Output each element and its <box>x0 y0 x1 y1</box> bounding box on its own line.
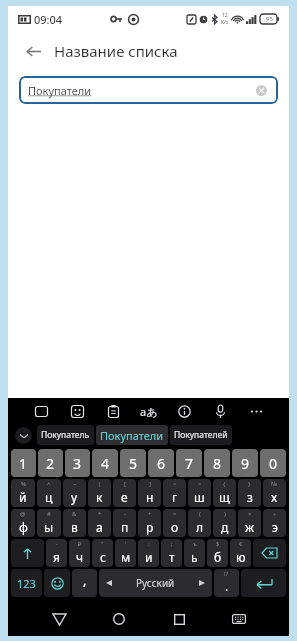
button[interactable]: ' <box>115 539 136 567</box>
button[interactable]: [ <box>113 479 136 507</box>
button[interactable]: : <box>138 539 159 567</box>
staticText: } <box>248 480 251 488</box>
button[interactable]: # <box>37 509 61 537</box>
staticText: 0 <box>269 454 278 473</box>
button[interactable]: 6 <box>148 449 174 477</box>
button[interactable]: , <box>72 569 97 597</box>
button[interactable]: € <box>230 539 251 567</box>
staticText: ; <box>171 540 173 548</box>
button[interactable]: 8 <box>204 449 230 477</box>
button[interactable]: ₽ <box>69 539 90 567</box>
button[interactable]: Sticker <box>66 400 88 422</box>
button[interactable]: Покупателей <box>170 425 232 445</box>
button[interactable]: Translate <box>138 400 160 422</box>
staticText: Покупателей <box>174 429 228 441</box>
button[interactable]: ÷ <box>263 509 286 537</box>
button[interactable]: 123 <box>11 569 42 597</box>
staticText: × <box>248 510 252 518</box>
button[interactable]: Русский <box>99 569 212 597</box>
button[interactable]: № <box>263 479 286 507</box>
button[interactable]: Hide keyboard <box>209 602 269 636</box>
staticText: з <box>247 489 253 505</box>
button[interactable]: * <box>88 509 111 537</box>
button[interactable]: = <box>163 509 186 537</box>
staticText: л <box>196 519 204 535</box>
staticText: 3 <box>73 454 82 473</box>
button[interactable]: - <box>46 539 67 567</box>
button[interactable]: 4 <box>92 449 118 477</box>
button[interactable]: Back <box>18 36 48 66</box>
staticText: 1 <box>19 454 28 473</box>
button[interactable]: ) <box>213 509 236 537</box>
staticText: @ <box>20 510 26 518</box>
button[interactable]: Shift <box>11 539 44 567</box>
staticText: 9 <box>241 454 250 473</box>
staticText: Русский <box>136 576 175 590</box>
button[interactable]: @ <box>11 509 35 537</box>
staticText: д <box>221 519 229 535</box>
button[interactable]: Emoji <box>44 569 70 597</box>
staticText: ( <box>199 510 201 518</box>
staticText: [ <box>124 480 126 488</box>
button[interactable]: Покупатели <box>19 76 278 104</box>
staticText: ~ <box>73 480 77 488</box>
button[interactable]: Expand suggestions <box>15 427 32 444</box>
staticText: ы <box>44 519 54 535</box>
button[interactable]: Voice input <box>209 400 231 422</box>
staticText: 2 <box>46 454 55 473</box>
button[interactable]: 1 <box>11 449 36 477</box>
staticText: 95 <box>266 15 273 23</box>
button[interactable]: | <box>88 479 111 507</box>
button[interactable]: Info <box>173 400 195 422</box>
button[interactable]: } <box>238 479 261 507</box>
button[interactable]: Покупатели <box>96 425 168 445</box>
button[interactable]: Home <box>89 602 149 636</box>
staticText: 123 <box>17 576 36 591</box>
staticText: , <box>83 571 87 589</box>
button[interactable]: Recent apps <box>149 602 209 636</box>
button[interactable]: { <box>213 479 236 507</box>
staticText: & <box>72 510 77 518</box>
button[interactable]: ~ <box>63 479 86 507</box>
button[interactable]: + <box>138 509 161 537</box>
button[interactable]: $ <box>207 539 228 567</box>
button[interactable]: ( <box>188 509 211 537</box>
button[interactable]: % <box>11 479 35 507</box>
button[interactable]: - <box>113 509 136 537</box>
staticText: !? <box>224 570 229 578</box>
button[interactable]: Clipboard <box>102 400 124 422</box>
staticText: у <box>71 489 78 505</box>
staticText: > <box>198 480 202 488</box>
button[interactable]: & <box>63 509 86 537</box>
button[interactable]: More options <box>245 400 267 422</box>
button[interactable]: Покупатель <box>37 425 94 445</box>
button[interactable]: 0 <box>260 449 286 477</box>
button[interactable]: Backspace <box>253 539 286 567</box>
button[interactable]: 9 <box>232 449 258 477</box>
staticText: 12 <box>222 12 228 19</box>
staticText: ж <box>245 519 255 535</box>
button[interactable]: " <box>92 539 113 567</box>
staticText: ц <box>45 489 53 505</box>
button[interactable]: Back <box>29 602 89 636</box>
button[interactable]: ^ <box>37 479 61 507</box>
staticText: < <box>173 480 177 488</box>
staticText: о <box>171 519 179 535</box>
button[interactable]: < <box>163 479 186 507</box>
button[interactable]: Clear text <box>253 82 269 98</box>
button[interactable]: ъ <box>184 539 205 567</box>
button[interactable]: ] <box>138 479 161 507</box>
button[interactable]: > <box>188 479 211 507</box>
button[interactable]: 2 <box>38 449 63 477</box>
button[interactable]: ; <box>161 539 182 567</box>
button[interactable]: Enter <box>241 569 286 597</box>
button[interactable]: × <box>238 509 261 537</box>
staticText: ] <box>149 480 151 488</box>
button[interactable]: 5 <box>120 449 146 477</box>
staticText: aあ <box>140 404 158 419</box>
button[interactable]: !? <box>214 569 239 597</box>
button[interactable]: 7 <box>176 449 202 477</box>
button[interactable]: GIF <box>30 400 52 422</box>
button[interactable]: 3 <box>65 449 90 477</box>
staticText: K/s <box>221 19 229 26</box>
